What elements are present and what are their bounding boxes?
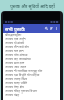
staticText: अध्याय बारह भक्ति xyxy=(5,81,28,85)
button[interactable]: More options xyxy=(54,24,59,33)
staticText: अध्याय नौ राजविद्या राजगुह्य योग xyxy=(5,69,43,73)
button[interactable]: Search xyxy=(44,24,49,33)
button[interactable]: अध्याय चौदह गुणत्रय विभाग xyxy=(3,89,60,93)
button[interactable]: अध्याय नौ राजविद्या राजगुह्य योग xyxy=(3,69,60,73)
button[interactable]: अध्याय पाँच संन्यास xyxy=(3,53,60,57)
button[interactable]: श्रीमद्भगवद्गीता xyxy=(3,33,60,37)
button[interactable]: अध्याय दो सांख्य xyxy=(3,41,60,45)
button[interactable]: अध्याय छह आत्मसंयम xyxy=(3,57,60,61)
button[interactable]: अध्याय आठ अक्षर xyxy=(3,65,60,69)
button[interactable]: अध्याय चार ज्ञान xyxy=(3,49,60,53)
button[interactable]: अध्याय पंद्रह xyxy=(3,93,60,97)
staticText: अध्याय चार ज्ञान xyxy=(5,49,24,53)
staticText: अध्याय चौदह गुणत्रय विभाग xyxy=(5,89,38,93)
staticText: अध्याय पंद्रह xyxy=(5,93,20,97)
staticText: अध्याय दस विभूति योग महिमा xyxy=(5,73,40,77)
staticText: अध्याय छह आत्मसंयम xyxy=(5,57,31,61)
staticText: अध्याय ग्यारह विश्व xyxy=(5,77,28,81)
button[interactable]: अध्याय तेरह क्षेत्र xyxy=(3,85,60,89)
button[interactable]: अध्याय एक अर्जुन xyxy=(3,37,60,41)
staticText: अध्याय एक अर्जुन xyxy=(5,37,26,41)
staticText: अध्याय पाँच संन्यास xyxy=(5,53,28,57)
staticText: पुस्तक और सूचियाँ आदि यहाँ xyxy=(10,3,55,9)
button[interactable]: अध्याय तीन कर्म योग xyxy=(3,45,60,49)
button[interactable]: अध्याय ग्यारह विश्व xyxy=(3,77,60,81)
staticText: अध्याय आठ अक्षर xyxy=(5,65,26,69)
button[interactable]: सभी पुस्तकें xyxy=(5,26,25,32)
button[interactable]: अध्याय सात ज्ञान xyxy=(3,61,60,65)
staticText: अध्याय सात ज्ञान xyxy=(5,61,25,65)
staticText: सभी पुस्तकें xyxy=(5,26,25,32)
staticText: श्रीमद्भगवद्गीता xyxy=(5,33,22,37)
staticText: अध्याय तेरह क्षेत्र xyxy=(5,85,24,89)
staticText: अध्याय दो सांख्य xyxy=(5,41,25,45)
staticText: अध्याय तीन कर्म योग xyxy=(5,45,29,49)
button[interactable]: Sort xyxy=(49,24,54,33)
button[interactable]: अध्याय दस विभूति योग महिमा xyxy=(3,73,60,77)
button[interactable]: अध्याय बारह भक्ति xyxy=(3,81,60,85)
